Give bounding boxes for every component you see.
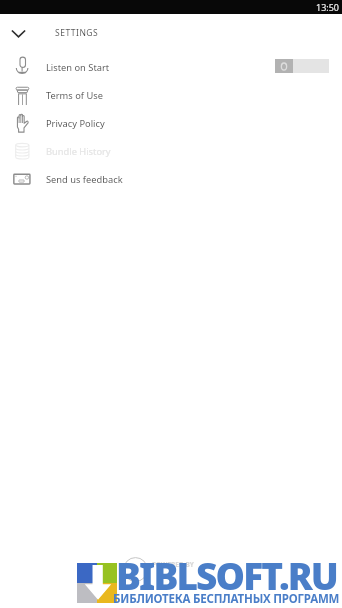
staticText: Bundle History	[46, 145, 111, 158]
staticText: БИБЛИОТЕКА БЕСПЛАТНЫХ ПРОГРАММ	[113, 591, 340, 607]
button[interactable]: Terms of Use	[0, 81, 342, 109]
staticText: POWERED BY	[152, 560, 194, 569]
staticText: Listen on Start	[46, 61, 110, 74]
staticText: SETTINGS	[55, 27, 99, 39]
button[interactable]: Collapse	[4, 19, 33, 48]
staticText: Terms of Use	[46, 89, 103, 102]
button[interactable]: Listen on Start	[0, 53, 342, 81]
button[interactable]: Listen on Start switch	[275, 59, 329, 73]
staticText: Send us feedback	[46, 173, 123, 186]
staticText: 13:50	[316, 1, 340, 13]
button[interactable]: Bundle History	[0, 137, 342, 165]
button[interactable]: Privacy Policy	[0, 109, 342, 137]
staticText: BIBLSOFT.RU	[116, 550, 337, 600]
staticText: Privacy Policy	[46, 117, 105, 130]
button[interactable]: Send us feedback	[0, 165, 342, 193]
